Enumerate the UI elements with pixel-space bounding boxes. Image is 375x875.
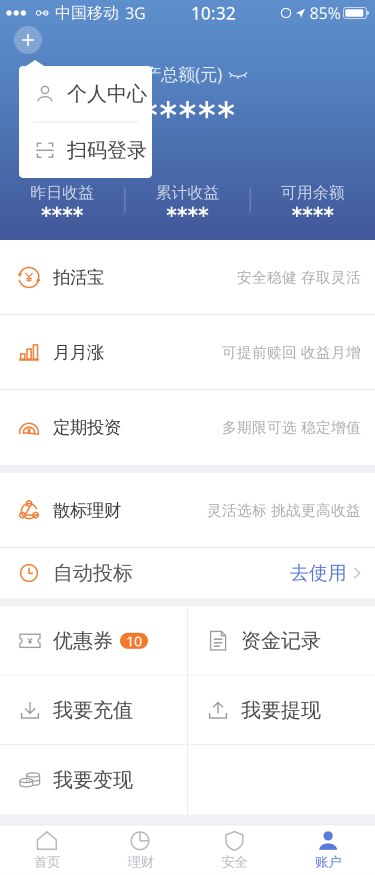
staticText: 首页 <box>34 854 60 870</box>
staticText: 3G <box>125 2 146 24</box>
button[interactable]: 月月涨 <box>0 315 375 390</box>
staticText: 85% <box>309 2 340 24</box>
staticText: 资金记录 <box>241 628 321 653</box>
staticText: 累计收益 <box>155 183 219 203</box>
button[interactable]: 自动投标 <box>0 548 375 598</box>
staticText: 自动投标 <box>53 561 133 585</box>
staticText: 去使用 <box>290 561 347 584</box>
staticText: 理财 <box>128 854 154 870</box>
button[interactable]: 扫码登录 <box>19 122 152 178</box>
staticText: 月月涨 <box>53 342 104 363</box>
staticText: 资产总额(元) <box>127 62 222 85</box>
staticText: 可用余额 <box>281 183 345 203</box>
staticText: 账户 <box>315 854 341 870</box>
staticText: 我要充值 <box>53 698 133 723</box>
button[interactable]: 个人中心 <box>19 66 152 121</box>
button[interactable]: 拍活宝 <box>0 240 375 315</box>
button[interactable]: 我要充值 <box>0 676 187 745</box>
button[interactable]: 资金记录 <box>188 606 375 676</box>
staticText: 中国移动 <box>55 3 119 23</box>
button[interactable]: 理财 <box>94 825 188 875</box>
staticText: 定期投资 <box>53 417 121 438</box>
button[interactable]: 首页 <box>0 825 94 875</box>
button[interactable]: 我要提现 <box>188 676 375 745</box>
staticText: 10 <box>126 631 142 651</box>
staticText: 安全稳健 存取灵活 <box>237 268 361 286</box>
button[interactable]: Add <box>8 20 48 60</box>
staticText: 10:32 <box>191 1 236 24</box>
staticText: 我要变现 <box>53 768 133 792</box>
staticText: 多期限可选 稳定增值 <box>222 418 361 436</box>
staticText: 散标理财 <box>53 500 121 521</box>
staticText: 灵活选标 挑战更高收益 <box>207 501 361 519</box>
staticText: 我要提现 <box>241 698 321 723</box>
button[interactable]: 我要变现 <box>0 745 187 815</box>
button[interactable]: 定期投资 <box>0 390 375 465</box>
button[interactable]: 账户 <box>281 825 375 875</box>
staticText: 扫码登录 <box>67 138 147 163</box>
staticText: 优惠券 <box>53 628 113 653</box>
staticText: 安全 <box>221 854 247 870</box>
button[interactable]: 优惠券 <box>0 606 187 676</box>
button[interactable]: 散标理财 <box>0 473 375 548</box>
staticText: 可提前赎回 收益月增 <box>222 343 361 361</box>
staticText: 个人中心 <box>67 81 147 106</box>
staticText: 拍活宝 <box>53 267 104 288</box>
button[interactable]: 安全 <box>187 825 281 875</box>
staticText: 昨日收益 <box>30 183 94 203</box>
